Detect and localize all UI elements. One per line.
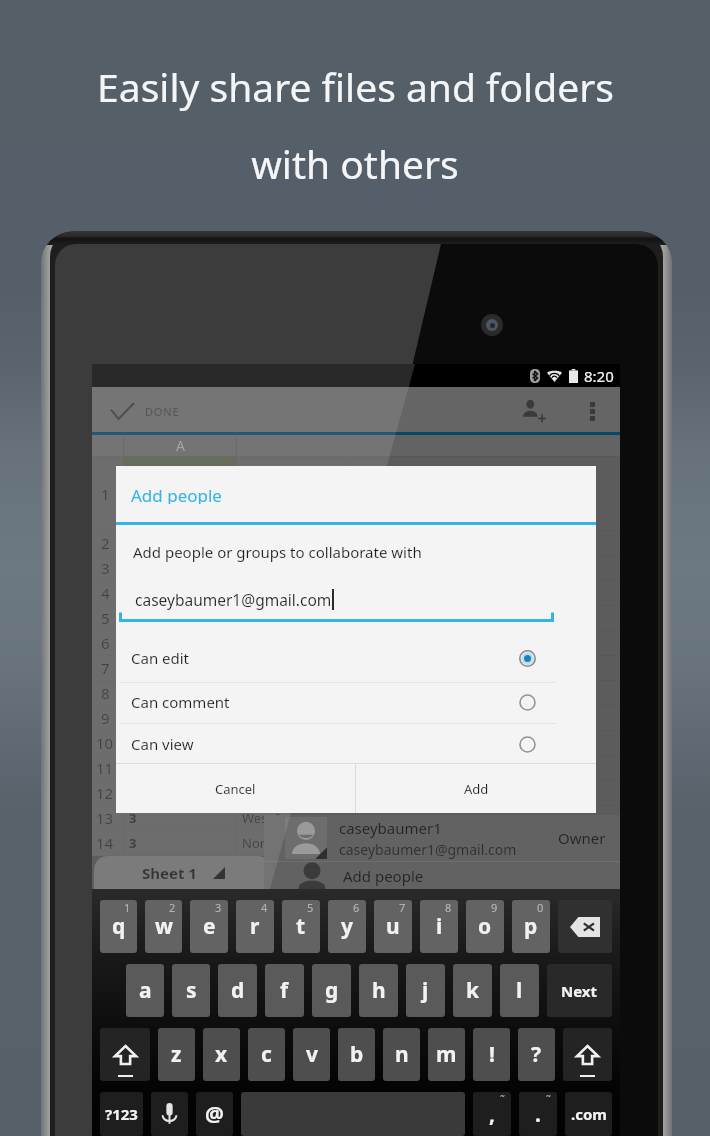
staticText: g bbox=[325, 976, 339, 1005]
staticText: Add bbox=[464, 780, 489, 798]
staticText: 1 bbox=[101, 484, 110, 504]
button[interactable]: e bbox=[190, 900, 228, 953]
button[interactable]: Delete bbox=[558, 900, 612, 953]
staticText: c bbox=[261, 1040, 272, 1069]
button[interactable]: o bbox=[466, 900, 504, 953]
button[interactable]: d bbox=[218, 964, 257, 1017]
staticText: Next bbox=[561, 981, 598, 1001]
staticText: u bbox=[386, 912, 400, 941]
staticText: j bbox=[422, 976, 429, 1005]
button[interactable]: @ bbox=[196, 1092, 233, 1136]
staticText: Can edit bbox=[131, 648, 190, 668]
button[interactable]: g bbox=[312, 964, 351, 1017]
staticText: 5 bbox=[307, 900, 314, 915]
staticText: y bbox=[341, 912, 353, 941]
button[interactable]: Add people bbox=[512, 388, 558, 434]
button[interactable]: z bbox=[158, 1028, 195, 1081]
button[interactable]: r bbox=[236, 900, 274, 953]
button[interactable]: j bbox=[406, 964, 445, 1017]
button[interactable]: ? bbox=[518, 1028, 555, 1081]
staticText: Owner bbox=[558, 828, 606, 848]
staticText: ? bbox=[531, 1040, 542, 1069]
staticText: m bbox=[436, 1040, 457, 1069]
staticText: Can comment bbox=[131, 692, 230, 712]
staticText: .com bbox=[571, 1104, 607, 1124]
button[interactable]: Shift bbox=[563, 1028, 612, 1081]
button[interactable]: t bbox=[282, 900, 320, 953]
staticText: Cancel bbox=[215, 780, 256, 798]
staticText: n bbox=[395, 1040, 409, 1069]
button[interactable]: . bbox=[519, 1092, 557, 1136]
button[interactable]: v bbox=[293, 1028, 330, 1081]
staticText: 4 bbox=[261, 900, 268, 915]
button[interactable]: f bbox=[265, 964, 304, 1017]
button[interactable]: , bbox=[473, 1092, 511, 1136]
button[interactable]: n bbox=[383, 1028, 420, 1081]
staticText: p bbox=[524, 912, 538, 941]
staticText: caseybaumer1@gmail.com bbox=[135, 589, 332, 610]
button[interactable]: caseybaumer1 bbox=[264, 815, 620, 861]
staticText: 1 bbox=[124, 900, 131, 915]
staticText: h bbox=[372, 976, 386, 1005]
staticText: , bbox=[489, 1100, 495, 1129]
button[interactable]: y bbox=[328, 900, 366, 953]
button[interactable]: Add bbox=[356, 764, 596, 813]
button[interactable]: c bbox=[248, 1028, 285, 1081]
staticText: Can view bbox=[131, 734, 194, 754]
staticText: 6 bbox=[353, 900, 360, 915]
staticText: 10 bbox=[96, 733, 114, 753]
staticText: o bbox=[478, 912, 492, 941]
button[interactable]: ! bbox=[473, 1028, 510, 1081]
staticText: 3 bbox=[129, 809, 137, 827]
staticText: @ bbox=[205, 1100, 224, 1129]
button[interactable]: i bbox=[420, 900, 458, 953]
staticText: l bbox=[516, 976, 523, 1005]
button[interactable]: l bbox=[500, 964, 539, 1017]
staticText: 0 bbox=[537, 900, 544, 915]
button[interactable]: Can comment bbox=[116, 681, 596, 723]
button[interactable]: m bbox=[428, 1028, 465, 1081]
button[interactable]: Add people bbox=[264, 862, 620, 889]
button[interactable]: Shift bbox=[100, 1028, 150, 1081]
button[interactable]: s bbox=[172, 964, 210, 1017]
button[interactable]: q bbox=[100, 900, 137, 953]
staticText: i bbox=[436, 912, 443, 941]
button[interactable]: .com bbox=[565, 1092, 612, 1136]
staticText: 12 bbox=[96, 783, 114, 803]
staticText: f bbox=[280, 976, 289, 1005]
button[interactable]: p bbox=[512, 900, 550, 953]
staticText: . bbox=[535, 1100, 541, 1129]
staticText: 6 bbox=[101, 633, 110, 653]
staticText: North bbox=[242, 834, 278, 852]
button[interactable]: Can edit bbox=[116, 637, 596, 679]
other: Voice input bbox=[162, 1103, 177, 1125]
staticText: ˜ bbox=[500, 1092, 505, 1107]
staticText: q bbox=[112, 912, 126, 941]
staticText: Add people bbox=[131, 484, 222, 504]
other: Shift bbox=[577, 1028, 598, 1081]
button[interactable]: b bbox=[338, 1028, 375, 1081]
staticText: Add people bbox=[343, 866, 424, 886]
button[interactable]: x bbox=[203, 1028, 240, 1081]
button[interactable]: u bbox=[374, 900, 412, 953]
button[interactable]: DONE bbox=[100, 393, 190, 429]
button[interactable]: h bbox=[359, 964, 398, 1017]
button[interactable]: k bbox=[453, 964, 492, 1017]
button[interactable]: ?123 bbox=[100, 1092, 143, 1136]
other: Delete bbox=[570, 917, 600, 937]
button[interactable]: a bbox=[126, 964, 164, 1017]
button[interactable]: More options bbox=[572, 391, 612, 431]
button[interactable]: Next bbox=[547, 964, 612, 1017]
button[interactable]: Can view bbox=[116, 723, 596, 765]
staticText: 8 bbox=[445, 900, 452, 915]
button[interactable]: Sheet 1 bbox=[94, 856, 272, 889]
staticText: 7 bbox=[101, 658, 110, 678]
button[interactable]: w bbox=[145, 900, 182, 953]
staticText: with others bbox=[251, 137, 459, 190]
button[interactable]: Cancel bbox=[116, 764, 355, 813]
staticText: s bbox=[186, 976, 197, 1005]
staticText: 2 bbox=[101, 533, 110, 553]
button[interactable]: Voice input bbox=[151, 1092, 188, 1136]
staticText: 3 bbox=[215, 900, 222, 915]
